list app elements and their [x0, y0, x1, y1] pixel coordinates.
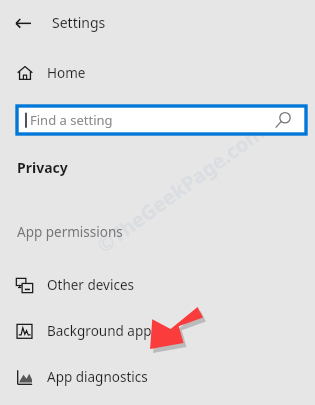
staticText: Settings [52, 13, 106, 32]
staticText: Privacy [17, 158, 68, 177]
button[interactable]: Find a setting [17, 106, 306, 134]
staticText: Other devices [47, 276, 135, 294]
button[interactable]: Home [0, 58, 315, 88]
button[interactable]: Back [7, 6, 39, 38]
button[interactable]: App diagnostics [0, 364, 315, 390]
button[interactable]: Other devices [0, 272, 315, 298]
staticText: App permissions [17, 223, 123, 241]
staticText: Background apps [47, 322, 158, 340]
staticText: App diagnostics [47, 368, 148, 386]
staticText: Find a setting [30, 111, 113, 129]
button[interactable]: Background apps [0, 318, 315, 344]
staticText: ©TheGeekPage.com [91, 118, 270, 258]
staticText: Home [47, 64, 86, 82]
